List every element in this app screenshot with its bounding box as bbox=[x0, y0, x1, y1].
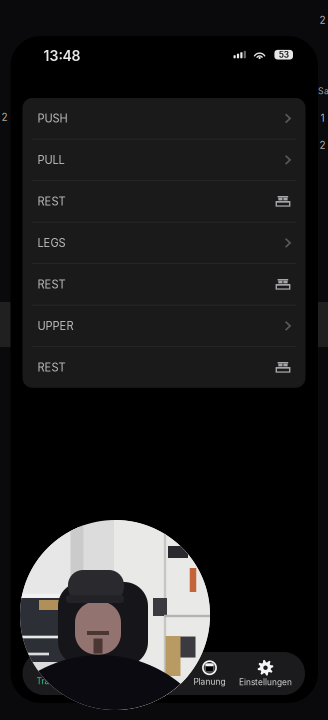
staticText: 53 bbox=[279, 50, 289, 60]
staticText: PUSH bbox=[37, 112, 67, 125]
staticText: Trainings bbox=[36, 676, 72, 686]
button[interactable]: PULL bbox=[22, 139, 305, 180]
button[interactable]: REST bbox=[22, 181, 305, 222]
button[interactable]: Trainings bbox=[23, 652, 85, 695]
button[interactable]: REST bbox=[22, 264, 305, 305]
staticText: REST bbox=[37, 278, 65, 291]
staticText: 2 bbox=[319, 14, 325, 26]
staticText: Sa bbox=[318, 86, 328, 96]
staticText: REST bbox=[37, 361, 65, 374]
staticText: 2 bbox=[319, 139, 325, 151]
staticText: 13:48 bbox=[43, 47, 80, 64]
staticText: Einstellungen bbox=[239, 677, 292, 687]
button[interactable]: LEGS bbox=[22, 222, 305, 263]
button[interactable]: REST bbox=[22, 347, 305, 388]
button[interactable]: PUSH bbox=[22, 98, 305, 139]
button[interactable]: Planung bbox=[178, 652, 240, 695]
staticText: REST bbox=[37, 195, 65, 208]
staticText: 2 bbox=[1, 111, 7, 123]
staticText: Planung bbox=[193, 677, 225, 687]
staticText: PULL bbox=[37, 153, 64, 167]
button[interactable]: Einstellungen bbox=[234, 652, 296, 695]
button[interactable]: UPPER bbox=[22, 305, 305, 346]
staticText: LEGS bbox=[37, 236, 65, 250]
staticText: 1 bbox=[320, 112, 324, 124]
staticText: UPPER bbox=[37, 319, 73, 333]
